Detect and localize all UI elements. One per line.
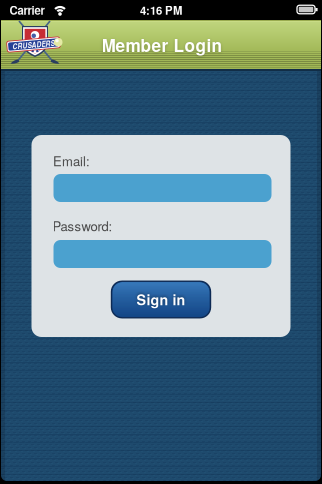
button[interactable]: Crusaders Home <box>6 21 64 67</box>
staticText: Password: <box>52 216 112 235</box>
button[interactable]: Email <box>53 174 271 202</box>
staticText: Sign in <box>136 289 185 310</box>
staticText: Carrier <box>9 2 44 18</box>
staticText: 4:16 PM <box>140 2 182 18</box>
button[interactable]: Sign in <box>111 281 210 318</box>
button[interactable]: Password <box>53 240 271 268</box>
staticText: CRUSADERS <box>12 39 54 50</box>
staticText: Member Login <box>101 33 222 57</box>
staticText: Email: <box>53 151 90 170</box>
